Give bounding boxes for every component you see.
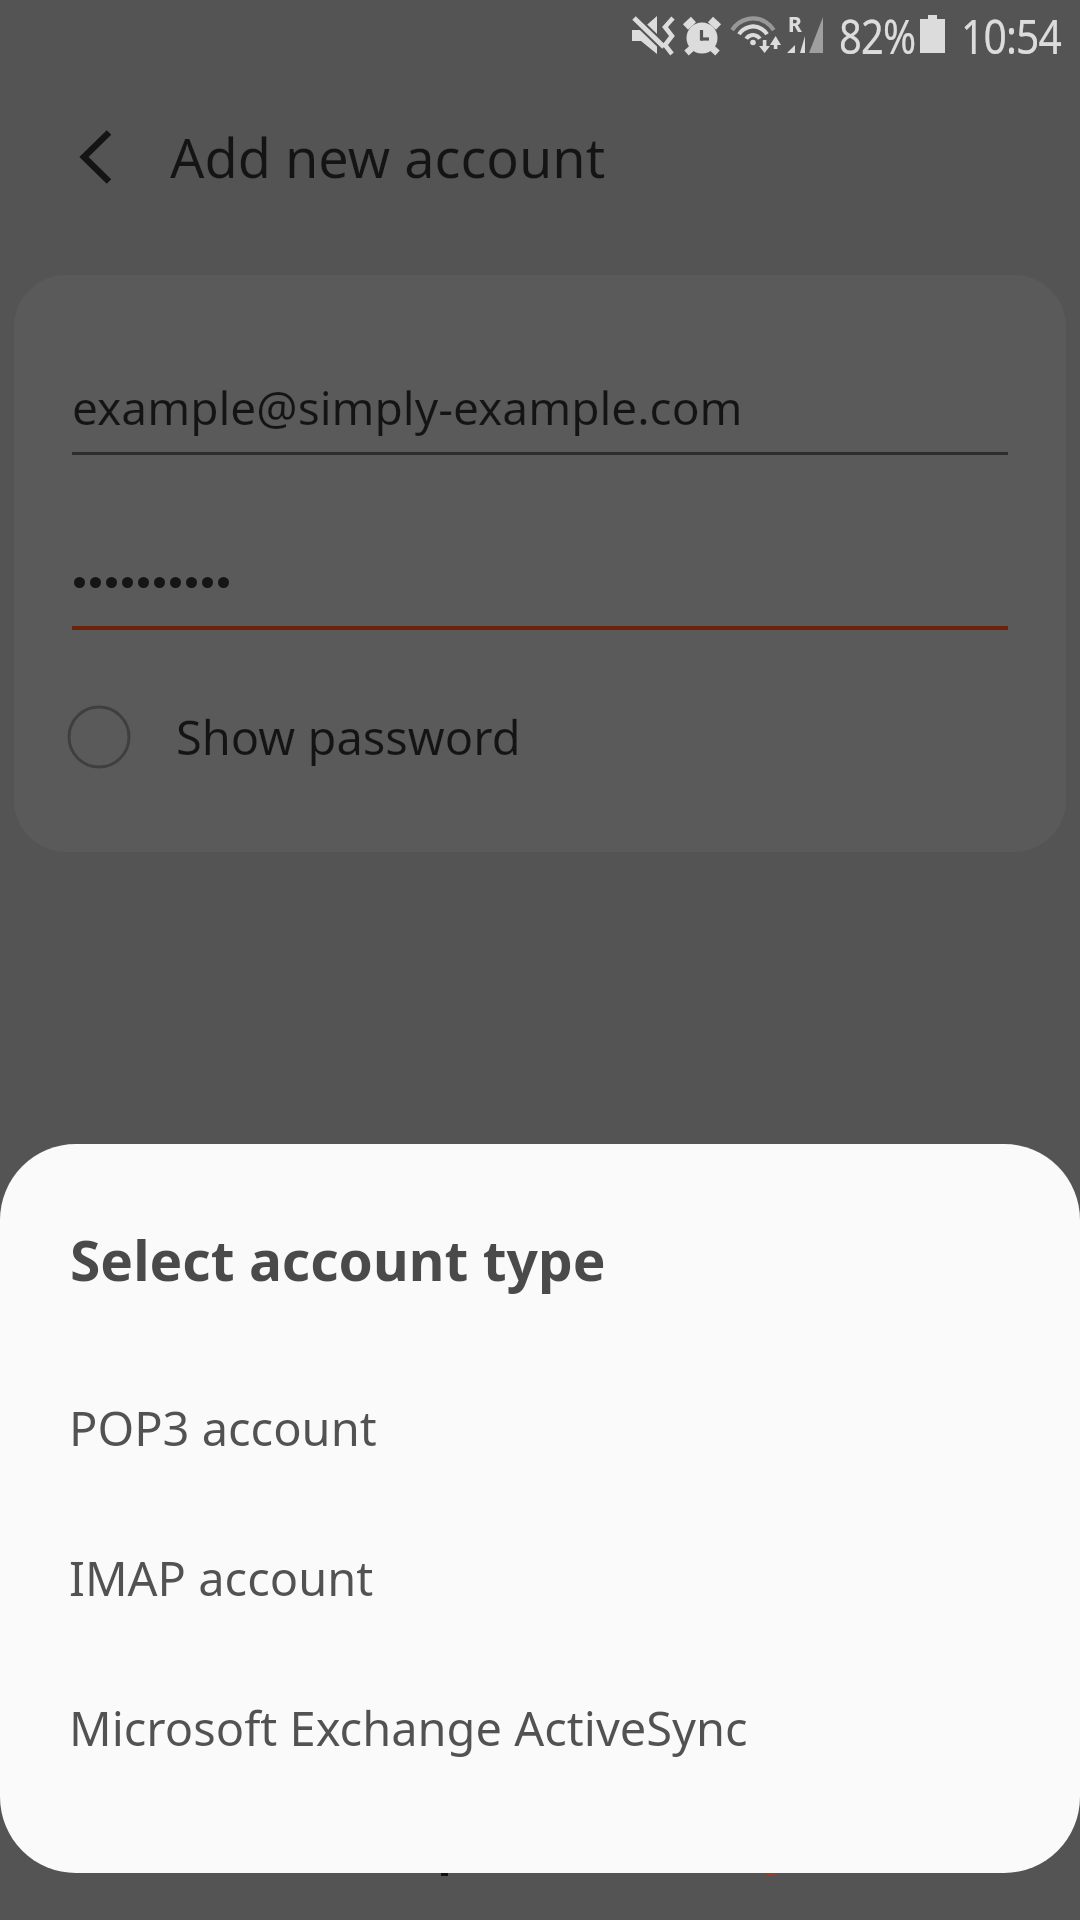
staticText: Add new account — [170, 120, 606, 194]
staticText: Microsoft Exchange ActiveSync — [69, 1696, 748, 1760]
staticText: 82% — [839, 3, 915, 68]
staticText: IMAP account — [69, 1546, 374, 1610]
staticText: example@simply-example.com — [72, 376, 743, 439]
staticText: Show password — [176, 705, 521, 769]
button[interactable]: Show password — [66, 695, 566, 779]
staticText: Select account type — [70, 1222, 606, 1297]
button[interactable]: Navigate up — [38, 100, 150, 212]
button[interactable]: Microsoft Exchange ActiveSync — [0, 1673, 1080, 1783]
button[interactable]: POP3 account — [0, 1373, 1080, 1483]
button[interactable]: IMAP account — [0, 1523, 1080, 1633]
staticText: R — [788, 10, 802, 39]
staticText: 10:54 — [961, 3, 1061, 68]
staticText: POP3 account — [69, 1396, 377, 1460]
